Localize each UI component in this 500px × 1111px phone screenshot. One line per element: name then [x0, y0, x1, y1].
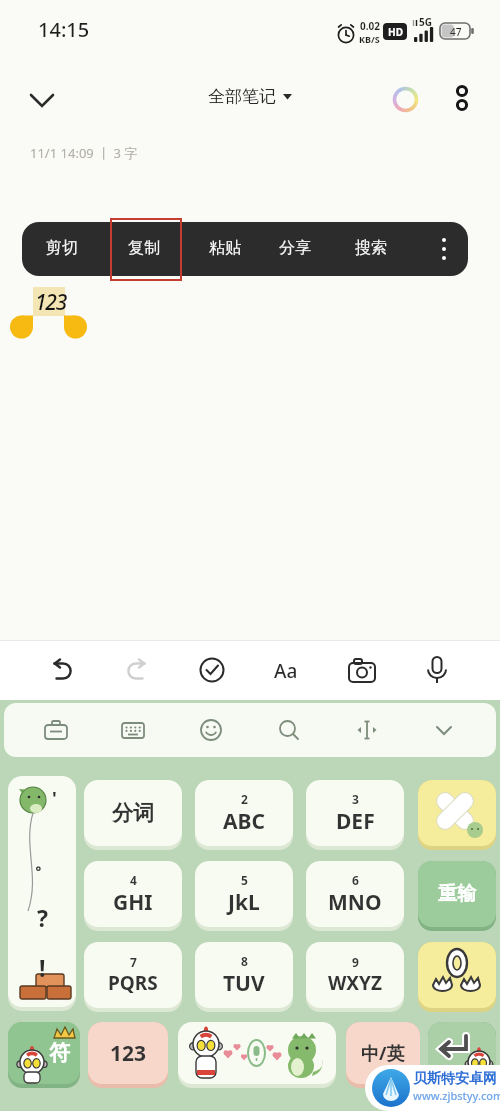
button[interactable] [428, 1022, 496, 1088]
button[interactable] [340, 648, 384, 692]
staticText: 9 [352, 954, 359, 970]
staticText: 4 [130, 872, 137, 888]
staticText: 6 [352, 872, 359, 888]
button[interactable]: 复制 [128, 238, 160, 258]
staticText: PQRS [108, 970, 158, 996]
button[interactable]: 分享 [279, 238, 311, 258]
button[interactable]: 搜索 [355, 238, 387, 258]
button[interactable]: 123 [88, 1022, 168, 1088]
button[interactable] [418, 942, 496, 1012]
button[interactable]: 2 [195, 780, 293, 850]
button[interactable] [20, 78, 64, 122]
staticText: 分词 [112, 800, 154, 826]
staticText: 。 [34, 852, 52, 875]
button[interactable] [345, 708, 389, 752]
button[interactable]: 6 [306, 861, 404, 931]
button[interactable]: 符 [8, 1022, 80, 1088]
staticText: 7 [130, 954, 137, 970]
button[interactable]: 剪切 [46, 238, 78, 258]
button[interactable] [267, 708, 311, 752]
button[interactable]: 7 [84, 942, 182, 1012]
staticText: HD [388, 25, 403, 39]
button[interactable] [415, 648, 459, 692]
button[interactable]: 重输 [418, 861, 496, 931]
staticText: 5 [241, 872, 248, 888]
staticText: 贝斯特安卓网 [413, 1070, 497, 1088]
staticText: WXYZ [328, 970, 382, 996]
staticText: MNO [328, 888, 382, 917]
button[interactable] [34, 708, 78, 752]
button[interactable]: 3 [306, 780, 404, 850]
button[interactable] [392, 86, 419, 113]
button[interactable] [40, 648, 84, 692]
staticText: GHI [113, 888, 153, 917]
staticText: ! [39, 952, 46, 983]
button[interactable]: 9 [306, 942, 404, 1012]
staticText: 14:15 [38, 16, 90, 43]
button[interactable] [422, 708, 466, 752]
staticText: 47 [450, 25, 462, 39]
staticText: 2 [241, 791, 248, 807]
button[interactable] [111, 708, 155, 752]
button[interactable]: 全部笔记 [208, 86, 292, 107]
staticText: JkL [228, 888, 260, 917]
button[interactable]: 中/英 [346, 1022, 420, 1088]
staticText: ' [52, 786, 57, 811]
staticText: 123 [110, 1039, 147, 1068]
button[interactable]: 粘贴 [209, 238, 241, 258]
staticText: 0.02 [360, 19, 380, 33]
staticText: 中/英 [361, 1041, 405, 1066]
button[interactable] [178, 1022, 336, 1088]
staticText: 123 [35, 288, 67, 317]
staticText: DEF [336, 807, 375, 836]
button[interactable] [418, 780, 496, 850]
button[interactable]: Aa [274, 658, 298, 684]
button[interactable] [115, 648, 159, 692]
staticText: 3 [352, 791, 359, 807]
button[interactable]: 5 [195, 861, 293, 931]
button[interactable]: ' [8, 776, 76, 1011]
staticText: 5G [419, 15, 432, 29]
staticText: 重输 [438, 882, 476, 906]
staticText: TUV [223, 969, 265, 998]
button[interactable]: 8 [195, 942, 293, 1012]
button[interactable]: 4 [84, 861, 182, 931]
staticText: 符 [49, 1040, 70, 1066]
button[interactable] [436, 235, 452, 263]
button[interactable] [452, 84, 472, 118]
staticText: www.zjbstyy.com [413, 1088, 500, 1103]
staticText: ? [37, 902, 48, 933]
button[interactable]: 分词 [84, 780, 182, 850]
staticText: 11/1 14:09 丨 3 字 [30, 144, 138, 162]
staticText: ABC [223, 807, 265, 836]
staticText: 8 [241, 953, 248, 969]
button[interactable] [189, 708, 233, 752]
staticText: 全部笔记 [208, 86, 276, 107]
button[interactable] [190, 648, 234, 692]
staticText: KB/S [359, 33, 380, 45]
